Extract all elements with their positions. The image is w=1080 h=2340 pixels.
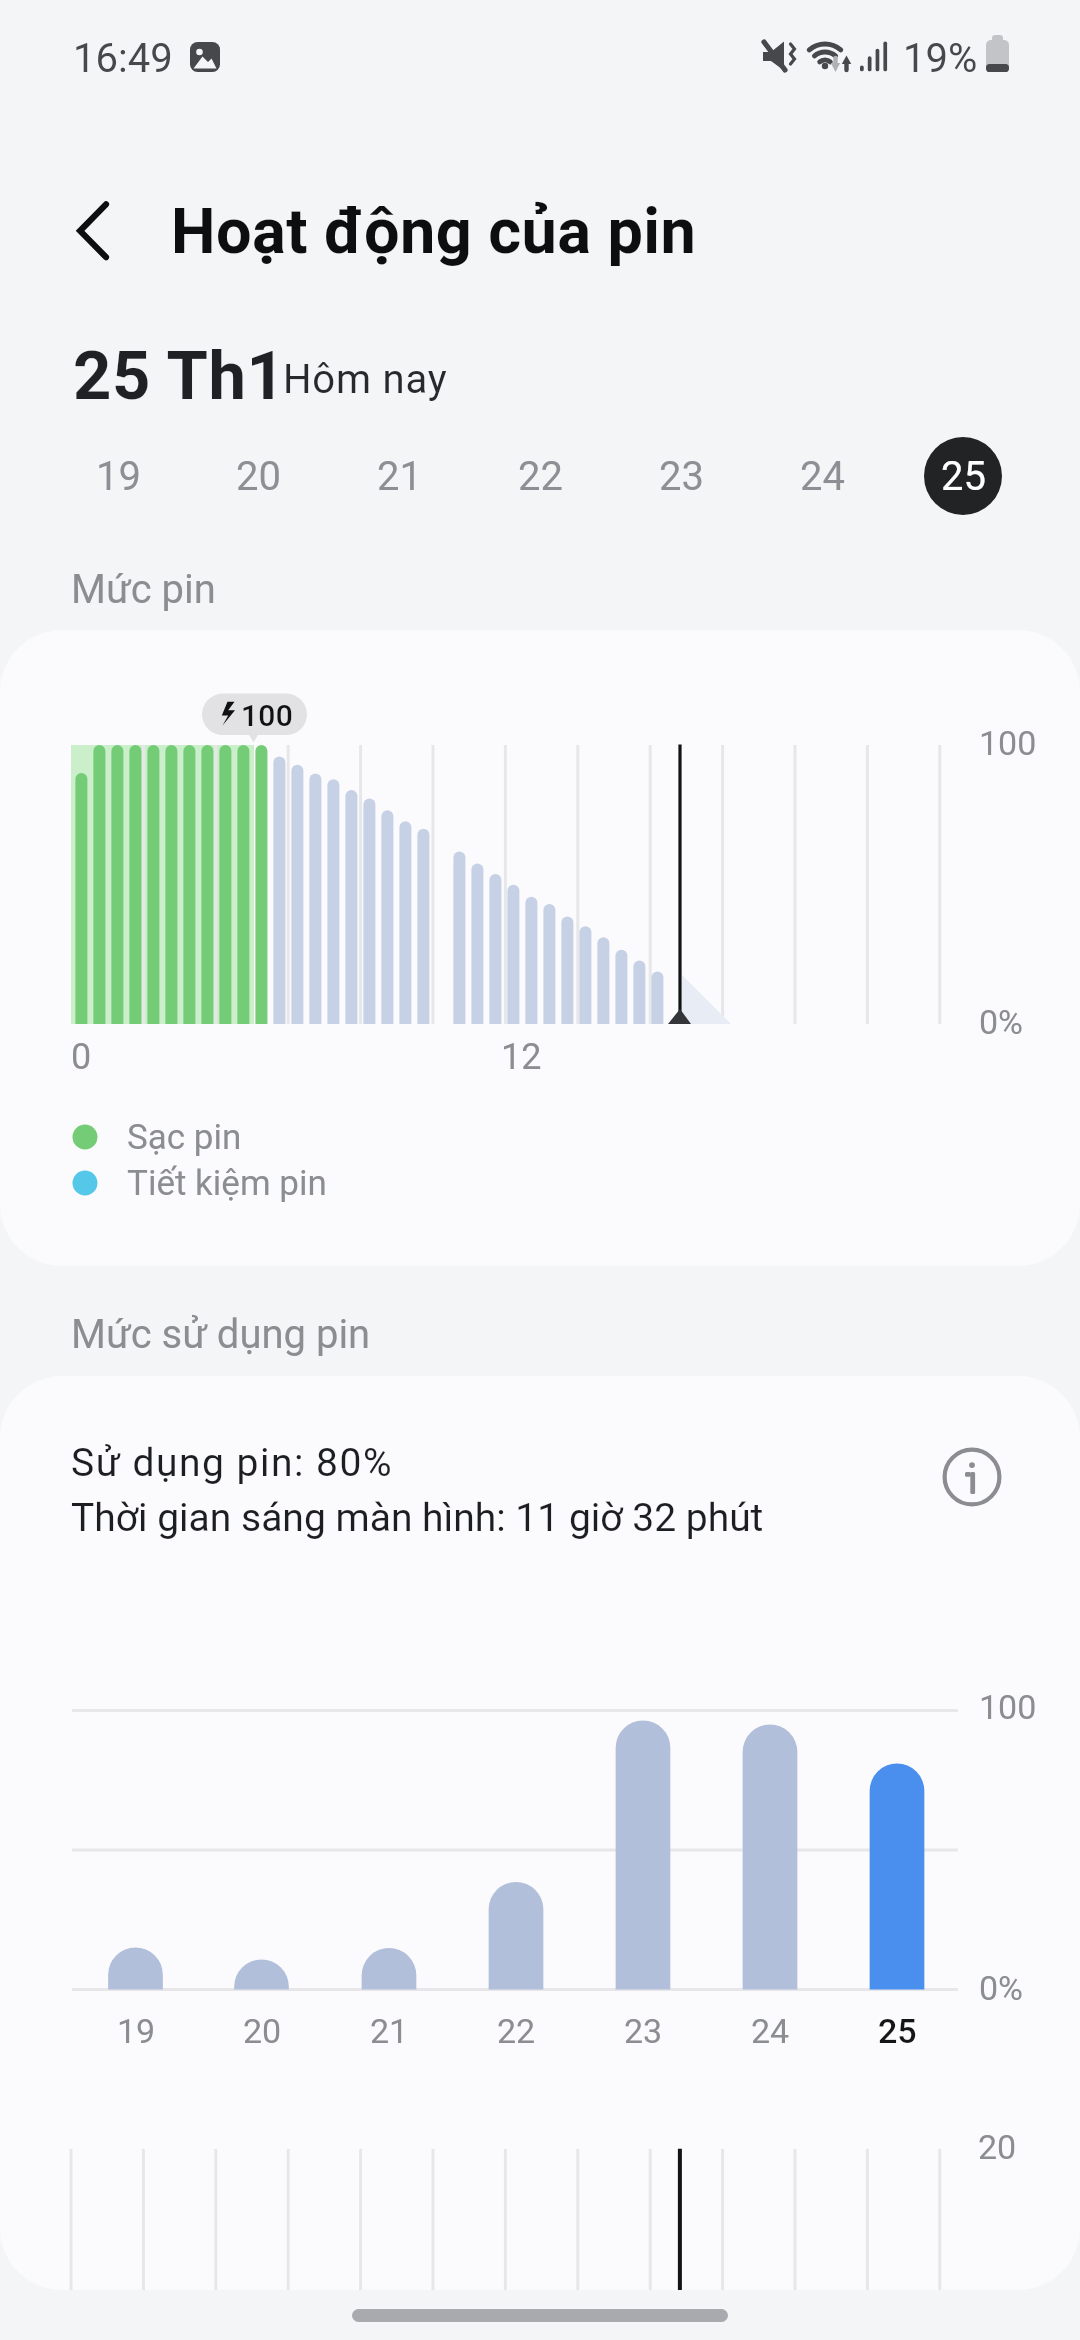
staticText: 0% [979, 1968, 1024, 2008]
staticText: 19 [117, 2011, 156, 2051]
button[interactable]: 24 [762, 428, 882, 524]
staticText: Hôm nay [283, 356, 448, 403]
button[interactable]: 25 [903, 428, 1023, 524]
button[interactable]: 25 [847, 2004, 947, 2058]
staticText: Tiết kiệm pin [127, 1163, 327, 1204]
staticText: Thời gian sáng màn hình: 11 giờ 32 phút [71, 1495, 764, 1541]
button[interactable]: Back [50, 186, 142, 278]
staticText: Sử dụng pin: 80% [71, 1440, 394, 1486]
staticText: 21 [377, 453, 422, 500]
staticText: 22 [518, 453, 563, 500]
button[interactable]: 19 [86, 2004, 186, 2058]
staticText: Sạc pin [127, 1117, 242, 1158]
button[interactable]: 21 [339, 428, 459, 524]
staticText: 100 [241, 698, 294, 733]
staticText: 22 [497, 2011, 536, 2051]
button[interactable]: 23 [593, 2004, 693, 2058]
staticText: 100 [979, 1687, 1037, 1727]
button[interactable]: 22 [466, 2004, 566, 2058]
staticText: 20 [978, 2127, 1017, 2167]
staticText: 20 [236, 453, 281, 500]
button[interactable]: 20 [198, 428, 318, 524]
staticText: 25 Th1 [73, 337, 286, 416]
staticText: Mức sử dụng pin [71, 1311, 371, 1358]
staticText: 23 [624, 2011, 663, 2051]
staticText: 25 [941, 453, 986, 500]
staticText: 23 [659, 453, 704, 500]
staticText: 25 [878, 2011, 917, 2051]
button[interactable]: Information [928, 1433, 1016, 1521]
staticText: 19% [903, 35, 978, 82]
staticText: 21 [370, 2011, 409, 2051]
button[interactable]: 22 [480, 428, 600, 524]
staticText: 24 [800, 453, 845, 500]
staticText: 12 [501, 1036, 542, 1078]
button[interactable]: 21 [339, 2004, 439, 2058]
staticText: Hoạt động của pin [171, 195, 697, 269]
button[interactable]: 23 [621, 428, 741, 524]
button[interactable]: 19 [58, 428, 178, 524]
staticText: Mức pin [71, 566, 216, 613]
staticText: 0% [979, 1002, 1024, 1042]
staticText: 0 [71, 1036, 92, 1078]
staticText: 16:49 [73, 35, 173, 82]
button[interactable]: 20 [212, 2004, 312, 2058]
button[interactable]: 24 [720, 2004, 820, 2058]
staticText: 100 [979, 723, 1037, 763]
staticText: 19 [96, 453, 141, 500]
staticText: 20 [243, 2011, 282, 2051]
staticText: 24 [751, 2011, 790, 2051]
